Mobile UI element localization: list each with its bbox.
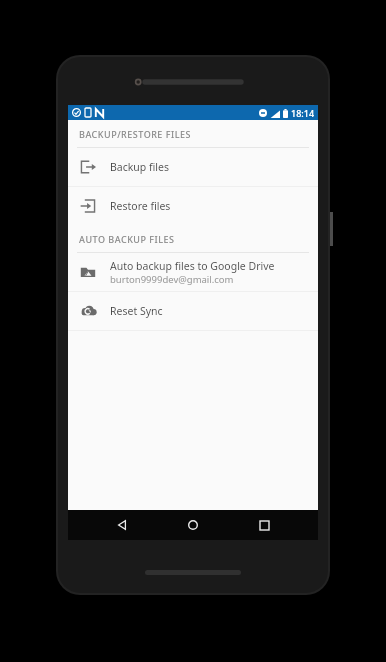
button[interactable]: Recents — [247, 510, 281, 540]
button[interactable]: Auto backup files to Google Drive — [68, 253, 318, 291]
button[interactable]: Backup files — [68, 148, 318, 186]
staticText: Restore files — [110, 199, 171, 213]
staticText: BACKUP/RESTORE FILES — [79, 128, 191, 140]
staticText: burton9999dev@gmail.com — [110, 273, 234, 286]
staticText: 18:14 — [291, 107, 315, 119]
button[interactable]: Back — [105, 510, 139, 540]
button[interactable]: Home — [176, 510, 210, 540]
other: Backup files — [77, 156, 99, 178]
other: Restore files — [77, 195, 99, 217]
button[interactable]: Restore files — [68, 187, 318, 225]
staticText: Reset Sync — [110, 304, 163, 318]
other: Reset Sync — [77, 300, 99, 322]
button[interactable]: Reset Sync — [68, 292, 318, 330]
staticText: AUTO BACKUP FILES — [79, 233, 175, 245]
staticText: Auto backup files to Google Drive — [110, 259, 275, 273]
other: Auto backup files to Google Drive — [77, 261, 99, 283]
staticText: Backup files — [110, 160, 170, 174]
